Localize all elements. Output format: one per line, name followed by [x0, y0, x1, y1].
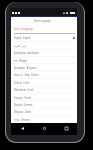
button[interactable]: বাংলা - Bengali: [11, 57, 77, 64]
staticText: عربى - العربية: [14, 44, 27, 48]
staticText: Azərbaycan - Azerbaijani: [14, 51, 39, 55]
button[interactable]: עברית - Hebrew: [11, 116, 77, 123]
staticText: Deutsch - German: [14, 103, 33, 107]
button[interactable]: Recents: [55, 123, 77, 134]
staticText: বাংলা - Bengali: [14, 59, 27, 63]
staticText: 简体中文 - Simp. Chinese: [14, 73, 39, 77]
staticText: Nederlands - Dutch: [14, 88, 34, 92]
staticText: Ελληνικά - Greek: [14, 110, 31, 114]
staticText: Български - Bulgarian: [14, 66, 37, 70]
button[interactable]: Ελληνικά - Greek: [11, 108, 77, 115]
button[interactable]: Français - French: [11, 94, 77, 101]
button[interactable]: Azərbaycan - Azerbaijani: [11, 49, 77, 56]
button[interactable]: Back: [11, 123, 33, 134]
button[interactable]: Nederlands - Dutch: [11, 86, 77, 93]
staticText: Enter a language: [14, 27, 34, 31]
button[interactable]: Home: [33, 123, 55, 134]
button[interactable]: عربى - العربية: [11, 42, 77, 49]
staticText: עברית - Hebrew: [14, 118, 30, 122]
button[interactable]: Čeština - Czech: [11, 79, 77, 86]
staticText: Čeština - Czech: [14, 81, 30, 85]
staticText: English - English: [14, 36, 31, 40]
button[interactable]: Deutsch - German: [11, 101, 77, 108]
staticText: Français - French: [14, 96, 31, 100]
staticText: Select Language: [34, 19, 51, 23]
button[interactable]: 简体中文 - Simp. Chinese: [11, 71, 77, 78]
button[interactable]: Български - Bulgarian: [11, 64, 77, 71]
button[interactable]: English - English: [11, 34, 77, 41]
